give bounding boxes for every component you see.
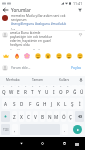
button[interactable]: D — [18, 98, 26, 109]
button[interactable]: Like — [78, 32, 83, 37]
button[interactable]: C — [26, 111, 31, 122]
staticText: J — [51, 101, 53, 107]
button[interactable]: 3 — [15, 85, 22, 96]
staticText: W — [9, 89, 14, 95]
staticText: N — [48, 114, 52, 120]
staticText: X — [20, 114, 23, 120]
button[interactable]: , — [12, 124, 18, 135]
button[interactable]: Merhaba — [0, 76, 25, 84]
button[interactable]: Kullanı — [51, 76, 77, 84]
staticText: M — [54, 114, 59, 120]
button[interactable]: 9 — [57, 85, 64, 96]
staticText: 1 — [3, 85, 5, 88]
button[interactable]: Z — [12, 111, 17, 122]
staticText: ?123 — [3, 128, 9, 132]
button[interactable]: Ş — [69, 98, 76, 109]
staticText: H — [43, 101, 47, 107]
button[interactable]: Send — [73, 125, 82, 134]
staticText: K — [57, 101, 60, 107]
button[interactable]: H — [41, 98, 48, 109]
staticText: O — [59, 89, 63, 95]
staticText: Ğ — [73, 89, 77, 95]
button[interactable]: G — [34, 98, 41, 109]
button[interactable]: J — [48, 98, 55, 109]
staticText: G — [36, 101, 40, 107]
button[interactable]: S — [10, 98, 18, 109]
button[interactable]: ?123 — [1, 124, 10, 135]
button[interactable]: Emoji reaction — [75, 51, 84, 60]
staticText: Yorumlar — [11, 7, 31, 13]
button[interactable]: Home — [36, 137, 49, 150]
staticText: Paylas — [71, 66, 82, 70]
staticText: İ — [79, 101, 81, 107]
button[interactable]: F — [26, 98, 34, 109]
staticText: memeleo Mutlu yillar askim seni cok sevi… — [11, 14, 67, 22]
staticText: 6 — [39, 85, 41, 88]
button[interactable]: 7 — [43, 85, 50, 96]
staticText: T — [31, 89, 34, 95]
button[interactable]: 8 — [50, 85, 57, 96]
staticText: 8 — [53, 85, 55, 88]
button[interactable]: Ü — [78, 85, 85, 96]
staticText: 4 — [25, 85, 27, 88]
staticText: Yorum ekle... — [11, 66, 31, 70]
button[interactable]: Emoji reaction — [54, 51, 63, 60]
staticText: A — [4, 101, 8, 107]
button[interactable]: Backspace — [75, 111, 84, 122]
button[interactable]: Emoji reaction — [22, 51, 31, 60]
button[interactable]: Shift — [1, 111, 10, 122]
button[interactable]: Emoji reaction — [43, 51, 52, 60]
button[interactable]: 6 — [36, 85, 43, 96]
button[interactable]: 4 — [22, 85, 29, 96]
button[interactable]: Recents — [58, 137, 71, 150]
button[interactable]: Emoji reaction — [64, 51, 73, 60]
staticText: U — [45, 89, 49, 95]
button[interactable]: Filter — [74, 6, 85, 14]
staticText: 9 — [60, 85, 62, 88]
button[interactable]: Ç — [68, 111, 73, 122]
button[interactable]: 0 — [64, 85, 71, 96]
button[interactable]: Back — [15, 137, 28, 150]
staticText: Tamam — [32, 78, 44, 82]
button[interactable]: N — [47, 111, 52, 122]
button[interactable]: K — [55, 98, 62, 109]
staticText: #sevgililergunu #askgunu #mutluluk — [11, 22, 67, 26]
staticText: I — [53, 89, 55, 95]
button[interactable]: Back — [0, 6, 10, 14]
button[interactable]: Ö — [61, 111, 66, 122]
staticText: V — [34, 114, 37, 120]
staticText: 7 — [46, 85, 48, 88]
button[interactable]: Voice input — [77, 76, 85, 84]
button[interactable]: Change keyboard — [72, 139, 82, 149]
button[interactable]: A — [2, 98, 10, 109]
button[interactable]: 1 — [0, 85, 8, 96]
button[interactable]: Tamam — [25, 76, 51, 84]
staticText: 5 — [32, 85, 34, 88]
button[interactable]: 2 — [8, 85, 15, 96]
button[interactable]: Emoji reaction — [33, 51, 42, 60]
button[interactable]: X — [19, 111, 24, 122]
staticText: 3sa 4 begenme Yanitla — [10, 49, 42, 53]
button[interactable]: Emoji reaction — [12, 51, 21, 60]
button[interactable]: . — [62, 124, 68, 135]
button[interactable]: V — [33, 111, 38, 122]
button[interactable]: Emoji reaction — [1, 51, 10, 60]
staticText: . — [64, 127, 66, 133]
staticText: Ş — [71, 101, 74, 107]
staticText: C — [27, 114, 30, 120]
staticText: Z — [13, 114, 16, 120]
staticText: 0 — [67, 85, 69, 88]
staticText: D — [20, 101, 24, 107]
staticText: L — [64, 101, 67, 107]
staticText: F — [29, 101, 32, 107]
staticText: Kullanı — [59, 78, 70, 82]
button[interactable]: İ — [76, 98, 83, 109]
staticText: Q — [2, 89, 6, 95]
button[interactable]: B — [40, 111, 45, 122]
button[interactable]: 5 — [29, 85, 36, 96]
button[interactable]: M — [54, 111, 59, 122]
button[interactable]: L — [62, 98, 69, 109]
button[interactable]: Paylas — [70, 64, 83, 72]
button[interactable]: Ğ — [71, 85, 78, 96]
